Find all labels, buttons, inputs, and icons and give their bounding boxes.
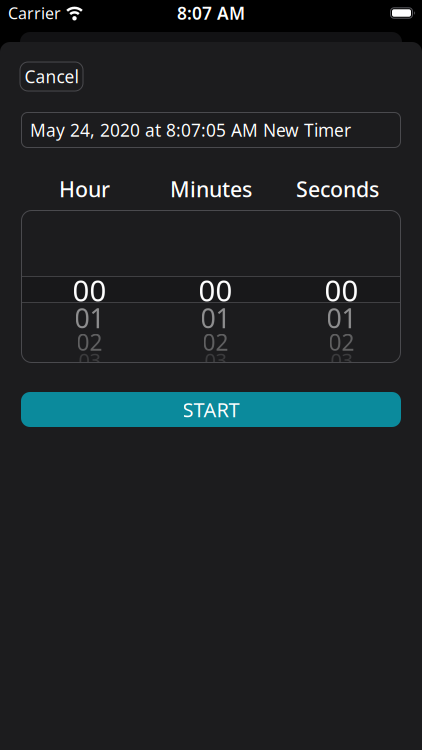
staticText: Hour	[59, 175, 110, 203]
staticText: START	[182, 396, 239, 423]
staticText: 02	[329, 327, 355, 357]
staticText: 03	[205, 347, 227, 373]
staticText: Carrier	[8, 2, 61, 24]
staticText: 03	[331, 347, 353, 373]
button[interactable]: Cancel	[19, 61, 83, 91]
staticText: Seconds	[296, 175, 379, 203]
staticText: 02	[77, 327, 103, 357]
staticText: Minutes	[170, 175, 252, 203]
staticText: 01	[327, 300, 357, 336]
staticText: 00	[199, 270, 233, 309]
staticText: 00	[325, 270, 359, 309]
staticText: 01	[201, 300, 231, 336]
staticText: 01	[75, 300, 105, 336]
staticText: 00	[73, 270, 107, 309]
staticText: Cancel	[24, 65, 78, 88]
button[interactable]: START	[21, 392, 401, 427]
staticText: May 24, 2020 at 8:07:05 AM New Timer	[30, 118, 351, 141]
staticText: 03	[79, 347, 101, 373]
staticText: 02	[203, 327, 229, 357]
staticText: 8:07 AM	[177, 1, 245, 24]
button[interactable]: May 24, 2020 at 8:07:05 AM New Timer	[21, 112, 401, 148]
